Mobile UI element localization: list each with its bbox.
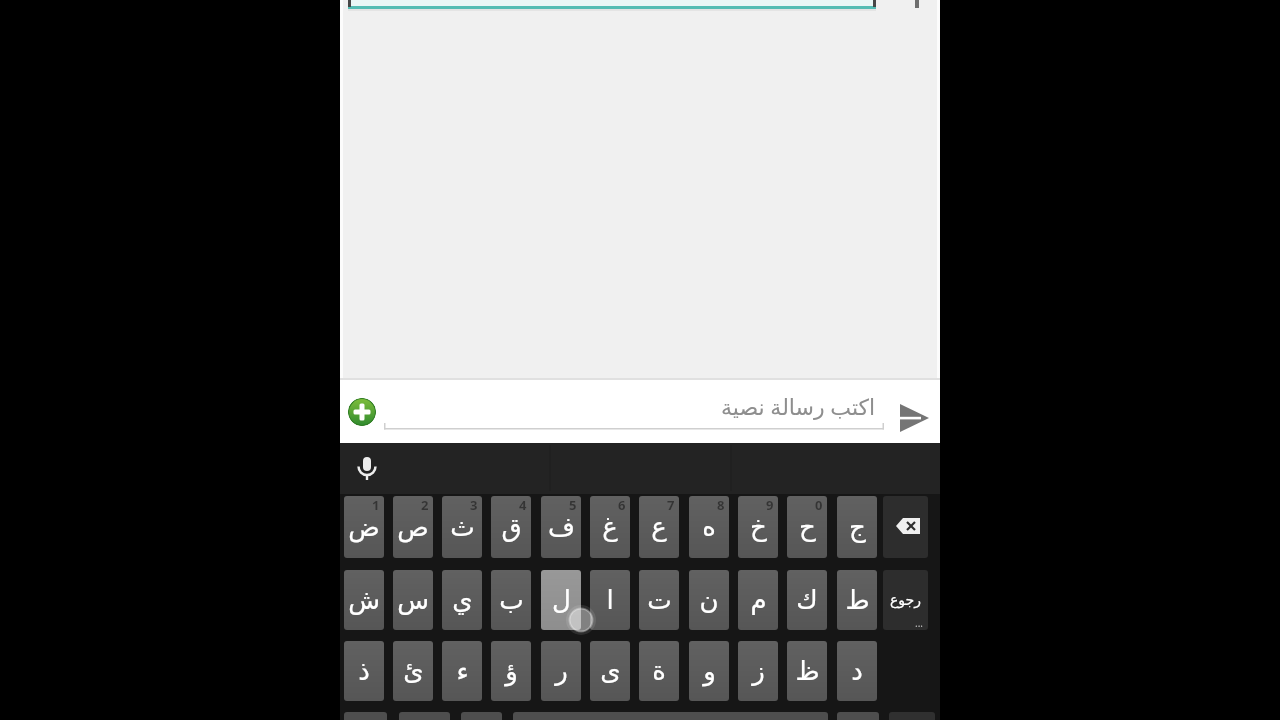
button[interactable] [399, 712, 450, 720]
button[interactable]: ه [689, 496, 729, 558]
button[interactable] [348, 398, 376, 426]
staticText: ت [647, 585, 672, 615]
staticText: ا [606, 585, 614, 615]
button[interactable]: ج [837, 496, 877, 558]
button[interactable] [344, 712, 387, 720]
button[interactable]: ا [590, 570, 630, 630]
button[interactable]: ض [344, 496, 384, 558]
button[interactable]: ط [837, 570, 877, 630]
button[interactable]: ي [442, 570, 482, 630]
staticText: ج [849, 512, 866, 542]
button[interactable]: ف [541, 496, 581, 558]
button[interactable]: ة [639, 641, 679, 701]
staticText: 5 [569, 496, 577, 514]
button[interactable]: ع [639, 496, 679, 558]
staticText: ع [651, 512, 667, 542]
staticText: ... [915, 616, 924, 630]
button[interactable]: ث [442, 496, 482, 558]
staticText: ي [452, 585, 473, 615]
button[interactable] [353, 453, 381, 485]
button[interactable] [461, 712, 502, 720]
button[interactable]: ش [344, 570, 384, 630]
button[interactable]: ك [787, 570, 827, 630]
staticText: د [851, 656, 863, 686]
button[interactable]: ئ [393, 641, 433, 701]
staticText: ز [752, 656, 765, 686]
staticText: ط [845, 585, 870, 615]
button[interactable]: ح [787, 496, 827, 558]
staticText: ض [348, 512, 380, 542]
staticText: خ [750, 512, 767, 542]
staticText: اكتب رسالة نصية [721, 391, 876, 421]
staticText: 1 [372, 496, 380, 514]
staticText: ل [552, 585, 571, 615]
staticText: ق [501, 512, 522, 542]
staticText: ى [600, 656, 621, 686]
button[interactable]: رجوع [883, 570, 928, 630]
button[interactable]: ز [738, 641, 778, 701]
staticText: 2 [421, 496, 429, 514]
staticText: 3 [470, 496, 478, 514]
button[interactable]: ن [689, 570, 729, 630]
staticText: ر [555, 656, 568, 686]
staticText: س [397, 585, 429, 615]
button[interactable]: د [837, 641, 877, 701]
staticText: ه [702, 512, 716, 542]
button[interactable] [837, 712, 879, 720]
button[interactable]: س [393, 570, 433, 630]
button[interactable]: ؤ [491, 641, 531, 701]
staticText: ة [652, 656, 666, 686]
staticText: ن [699, 585, 719, 615]
button[interactable]: ص [393, 496, 433, 558]
button[interactable]: ذ [344, 641, 384, 701]
staticText: و [703, 656, 716, 686]
staticText: ح [799, 512, 816, 542]
button[interactable]: ى [590, 641, 630, 701]
staticText: ذ [358, 656, 370, 686]
button[interactable] [883, 496, 928, 558]
staticText: ك [796, 585, 818, 615]
button[interactable]: ر [541, 641, 581, 701]
staticText: 9 [766, 496, 774, 514]
staticText: 0 [815, 496, 823, 514]
button[interactable]: غ [590, 496, 630, 558]
button[interactable]: ل [541, 570, 581, 630]
button[interactable] [895, 399, 935, 437]
button[interactable]: ب [491, 570, 531, 630]
button[interactable]: اكتب رسالة نصية [576, 388, 876, 424]
button[interactable]: و [689, 641, 729, 701]
staticText: 7 [667, 496, 675, 514]
button[interactable]: خ [738, 496, 778, 558]
staticText: ؤ [505, 656, 518, 686]
button[interactable]: ق [491, 496, 531, 558]
button[interactable]: م [738, 570, 778, 630]
button[interactable]: ء [442, 641, 482, 701]
staticText: رجوع [890, 592, 922, 608]
staticText: ء [456, 656, 469, 686]
staticText: ص [397, 512, 429, 542]
staticText: غ [602, 512, 618, 542]
staticText: ظ [795, 656, 820, 686]
staticText: م [750, 585, 767, 615]
staticText: ب [499, 585, 524, 615]
staticText: 4 [519, 496, 527, 514]
staticText: 8 [717, 496, 725, 514]
staticText: ئ [403, 656, 424, 686]
staticText: 6 [618, 496, 626, 514]
button[interactable]: ظ [787, 641, 827, 701]
button[interactable]: ت [639, 570, 679, 630]
staticText: ف [548, 512, 575, 542]
staticText: ث [450, 512, 475, 542]
staticText: ش [348, 585, 380, 615]
